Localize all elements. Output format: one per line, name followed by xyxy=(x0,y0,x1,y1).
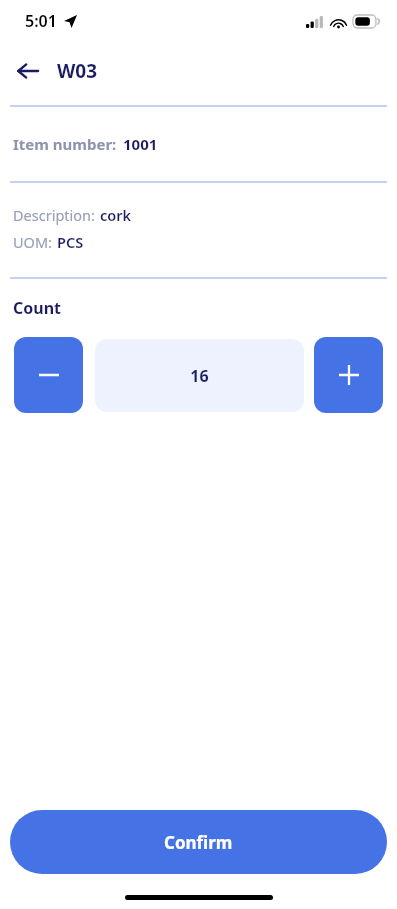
staticText: 5:01 xyxy=(25,10,57,32)
staticText: Item number: xyxy=(13,134,117,154)
button[interactable]: Back xyxy=(8,51,48,91)
button[interactable]: Decrease count xyxy=(14,337,83,413)
staticText: 1001 xyxy=(123,134,158,154)
staticText: Description: xyxy=(13,205,95,225)
staticText: Confirm xyxy=(164,831,233,854)
button[interactable]: Increase count xyxy=(314,337,383,413)
staticText: 16 xyxy=(190,365,209,387)
staticText: cork xyxy=(100,205,132,225)
staticText: Count xyxy=(13,297,62,319)
staticText: UOM: xyxy=(13,232,52,252)
button[interactable]: 16 xyxy=(95,339,304,412)
staticText: W03 xyxy=(57,58,98,84)
staticText: PCS xyxy=(57,232,84,252)
button[interactable]: Confirm xyxy=(10,810,387,874)
